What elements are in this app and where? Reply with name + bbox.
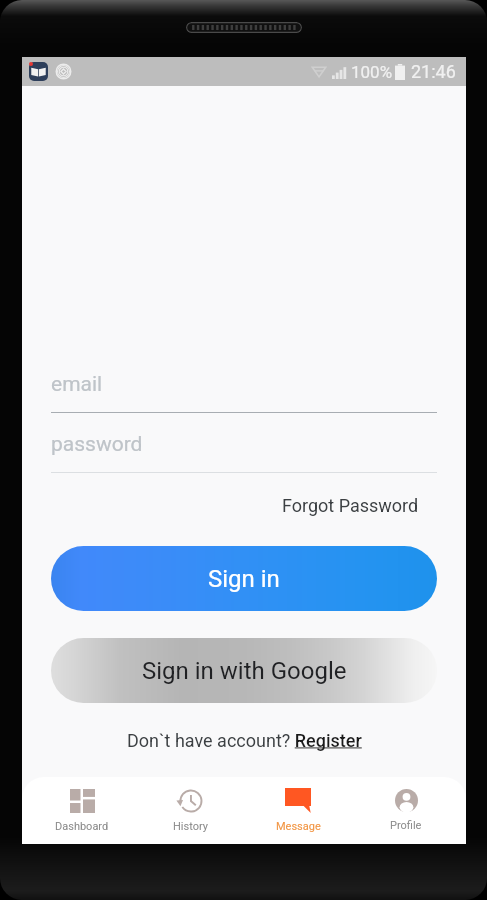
staticText: Message	[276, 820, 321, 833]
staticText: Sign in	[208, 565, 280, 593]
staticText: History	[173, 820, 208, 833]
button[interactable]: Forgot Password	[282, 488, 419, 522]
button[interactable]: Sign in with Google	[51, 638, 437, 703]
staticText: password	[51, 432, 143, 457]
button[interactable]: Profile	[352, 777, 460, 844]
button[interactable]: Dashboard	[28, 777, 136, 844]
button[interactable]: Message	[244, 777, 352, 844]
button[interactable]: Don`t have account? Register	[123, 726, 366, 755]
staticText: Forgot Password	[282, 495, 419, 516]
staticText: Dashboard	[55, 820, 109, 833]
staticText: 21:46	[411, 61, 456, 82]
staticText: Sign in with Google	[142, 657, 347, 685]
button[interactable]: Sign in	[51, 546, 437, 611]
button[interactable]: History	[136, 777, 244, 844]
button[interactable]: password	[51, 433, 437, 473]
staticText: 100%	[351, 62, 393, 82]
staticText: Profile	[390, 819, 422, 832]
staticText: email	[51, 372, 103, 397]
button[interactable]: email	[51, 373, 437, 413]
staticText: Don`t have account? Register	[127, 730, 362, 751]
